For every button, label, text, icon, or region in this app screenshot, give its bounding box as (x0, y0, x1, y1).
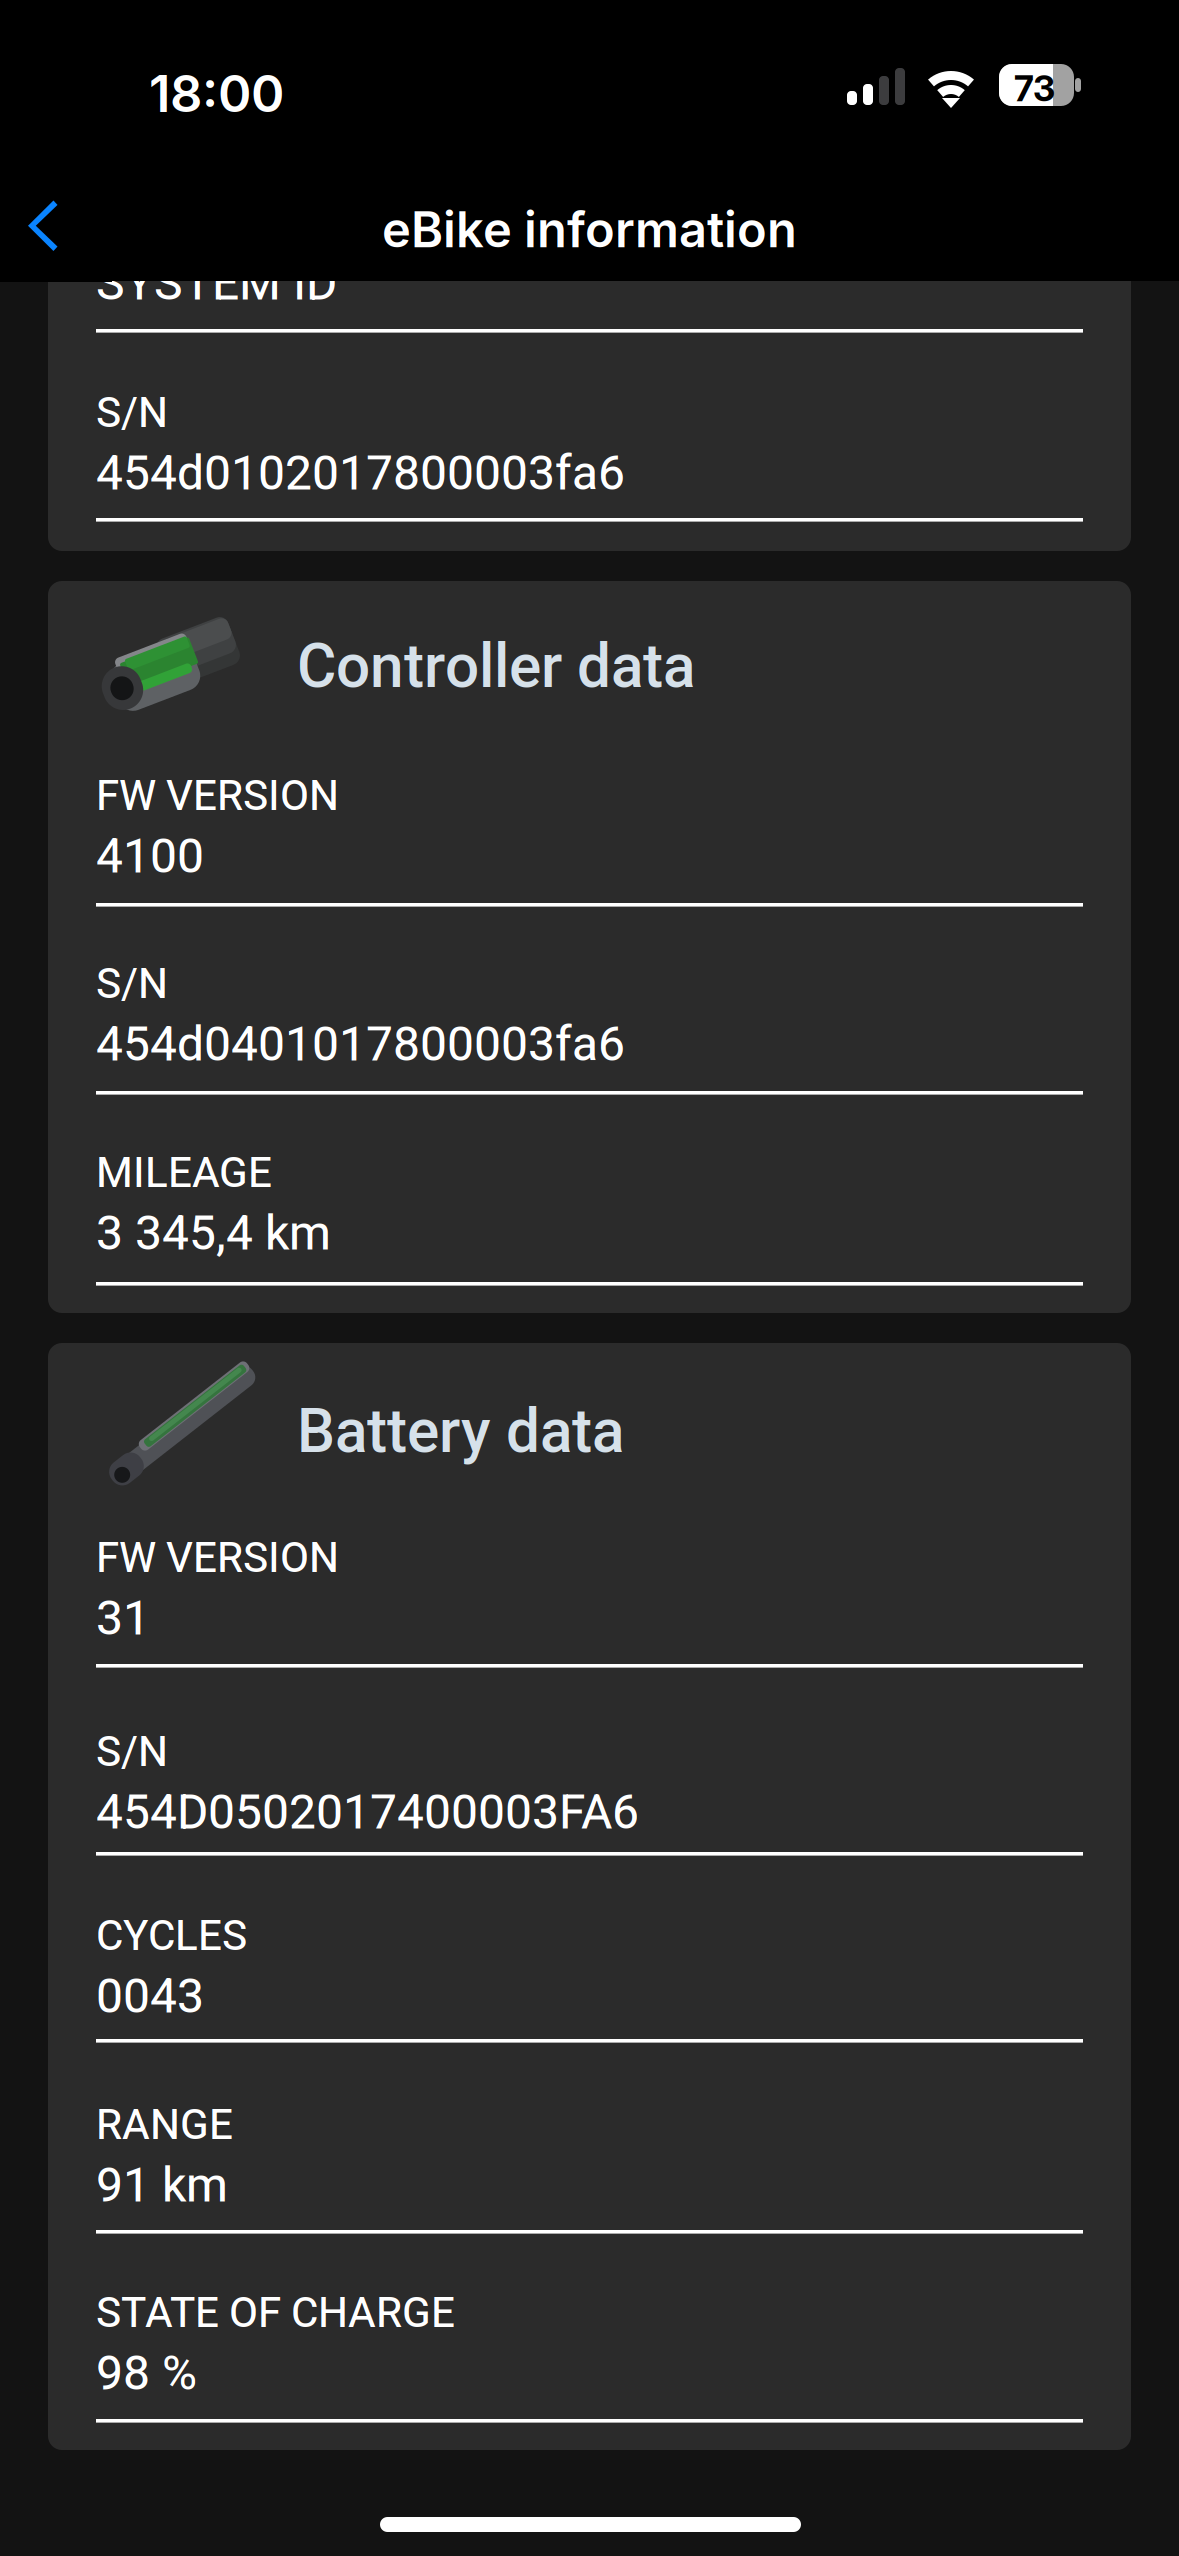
staticText: S/N (96, 388, 168, 437)
staticText: S/N (96, 1727, 168, 1776)
staticText: S/N (96, 959, 168, 1008)
staticText: eBike information (382, 200, 797, 259)
staticText: FW VERSION (96, 771, 339, 820)
staticText: 454D0502017400003FA6 (96, 1784, 639, 1840)
staticText: STATE OF CHARGE (96, 2288, 455, 2337)
staticText: CYCLES (96, 1911, 247, 1960)
button[interactable]: Back (0, 170, 112, 282)
staticText: 91 km (96, 2157, 228, 2213)
staticText: 4100 (96, 828, 204, 884)
staticText: 0043 (96, 1968, 204, 2024)
staticText: Controller data (297, 631, 695, 702)
staticText: 18:00 (149, 63, 284, 124)
staticText: 3 345,4 km (96, 1205, 331, 1261)
staticText: FW VERSION (96, 1533, 339, 1582)
staticText: 31 (96, 1590, 150, 1646)
staticText: 73 (1014, 67, 1055, 110)
staticText: Battery data (297, 1396, 624, 1467)
staticText: RANGE (96, 2100, 233, 2149)
staticText: MILEAGE (96, 1148, 272, 1197)
staticText: 454d0102017800003fa6 (96, 445, 625, 501)
staticText: 454d0401017800003fa6 (96, 1016, 625, 1072)
staticText: SYSTEM ID (96, 255, 337, 311)
staticText: 98 % (96, 2345, 197, 2401)
